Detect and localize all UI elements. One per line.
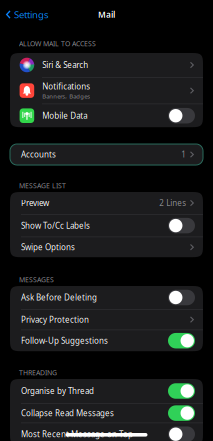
button[interactable]: Organise by Thread <box>10 379 203 403</box>
staticText: Collapse Read Messages <box>21 408 114 419</box>
staticText: Siri & Search <box>42 60 88 70</box>
staticText: MESSAGES <box>19 275 54 284</box>
staticText: Ask Before Deleting <box>21 292 97 303</box>
staticText: Preview <box>21 198 49 208</box>
staticText: Banners, Badges <box>42 92 90 100</box>
staticText: Accounts <box>21 149 56 160</box>
button[interactable]: Notifications <box>10 78 203 104</box>
button[interactable]: Most Recent Message on Top <box>10 423 203 441</box>
button[interactable]: Show To/Cc Labels <box>10 215 203 237</box>
staticText: Follow-Up Suggestions <box>21 335 108 346</box>
staticText: Notifications <box>42 81 90 92</box>
staticText: Mail <box>98 9 115 20</box>
staticText: MESSAGE LIST <box>19 181 66 190</box>
staticText: Settings <box>14 8 49 21</box>
button[interactable]: Accounts <box>10 144 203 165</box>
button[interactable]: Swipe Options <box>10 237 203 257</box>
button[interactable]: Privacy Protection <box>10 310 203 330</box>
button[interactable]: Ask Before Deleting <box>10 286 203 309</box>
button[interactable]: Settings <box>0 3 49 26</box>
staticText: 2 Lines <box>159 198 186 208</box>
button[interactable]: Mobile Data <box>10 104 203 127</box>
staticText: Swipe Options <box>21 242 75 253</box>
staticText: Privacy Protection <box>21 314 89 325</box>
staticText: Mobile Data <box>42 110 87 121</box>
staticText: ALLOW MAIL TO ACCESS <box>19 39 96 48</box>
button[interactable]: Collapse Read Messages <box>10 404 203 423</box>
staticText: 1 <box>181 149 186 160</box>
staticText: Show To/Cc Labels <box>21 220 90 231</box>
staticText: THREADING <box>19 368 57 377</box>
button[interactable]: Follow-Up Suggestions <box>10 330 203 351</box>
button[interactable]: Preview <box>10 192 203 214</box>
staticText: Organise by Thread <box>21 386 94 396</box>
button[interactable]: Siri & Search <box>10 53 203 77</box>
staticText: Most Recent Message on Top <box>21 429 133 440</box>
